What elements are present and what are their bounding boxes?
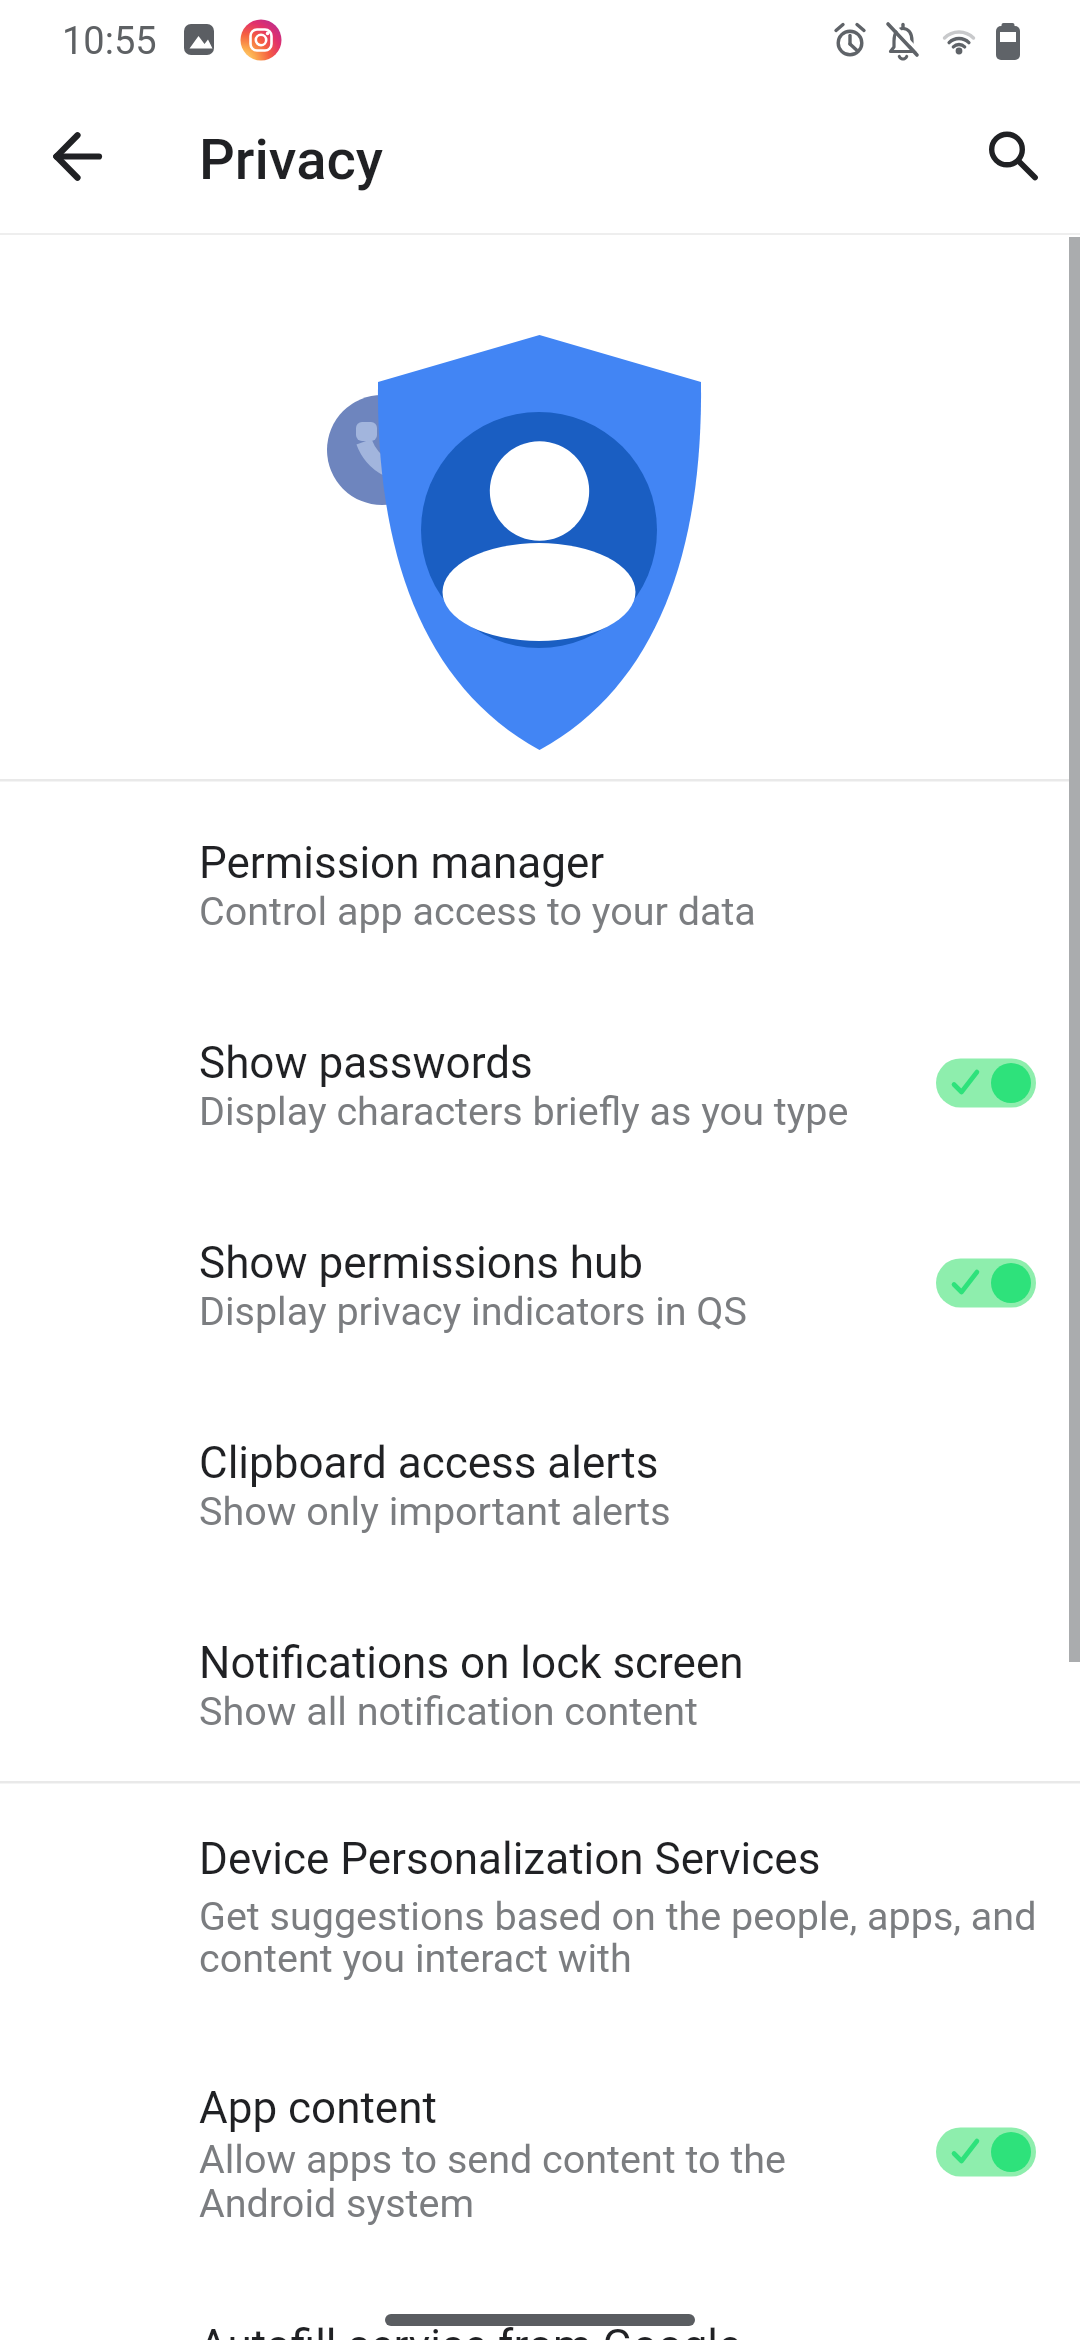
staticText: Clipboard access alerts (199, 1437, 659, 1489)
staticText: Autofill service from Google (199, 2320, 742, 2340)
button[interactable] (0, 982, 1080, 1182)
staticText: Device Personalization Services (199, 1833, 821, 1885)
staticText: 10:55 (62, 19, 157, 64)
button[interactable] (0, 1582, 1080, 1782)
button[interactable] (0, 2284, 1080, 2340)
staticText: App content (199, 2082, 437, 2134)
button[interactable] (926, 1248, 1046, 1318)
button[interactable] (0, 1182, 1080, 1382)
staticText: Android system (199, 2180, 475, 2226)
staticText: Display characters briefly as you type (199, 1088, 849, 1134)
staticText: Notifications on lock screen (199, 1637, 744, 1689)
staticText: Privacy (199, 127, 384, 193)
staticText: Show passwords (199, 1037, 533, 1089)
button[interactable] (926, 2117, 1046, 2187)
staticText: Permission manager (199, 837, 605, 889)
button[interactable] (0, 2032, 1080, 2284)
staticText: Show only important alerts (199, 1488, 671, 1534)
button[interactable] (0, 1784, 1080, 2032)
staticText: content you interact with (199, 1935, 632, 1981)
button[interactable] (40, 130, 116, 184)
staticText: Control app access to your data (199, 888, 756, 934)
button[interactable] (0, 1382, 1080, 1582)
staticText: Display privacy indicators in QS (199, 1288, 747, 1334)
button[interactable] (0, 782, 1080, 982)
button[interactable] (980, 124, 1044, 188)
staticText: Show all notification content (199, 1688, 698, 1734)
button[interactable] (926, 1048, 1046, 1118)
staticText: Get suggestions based on the people, app… (199, 1893, 1037, 1939)
staticText: Show permissions hub (199, 1237, 643, 1289)
staticText: Allow apps to send content to the (199, 2136, 787, 2182)
